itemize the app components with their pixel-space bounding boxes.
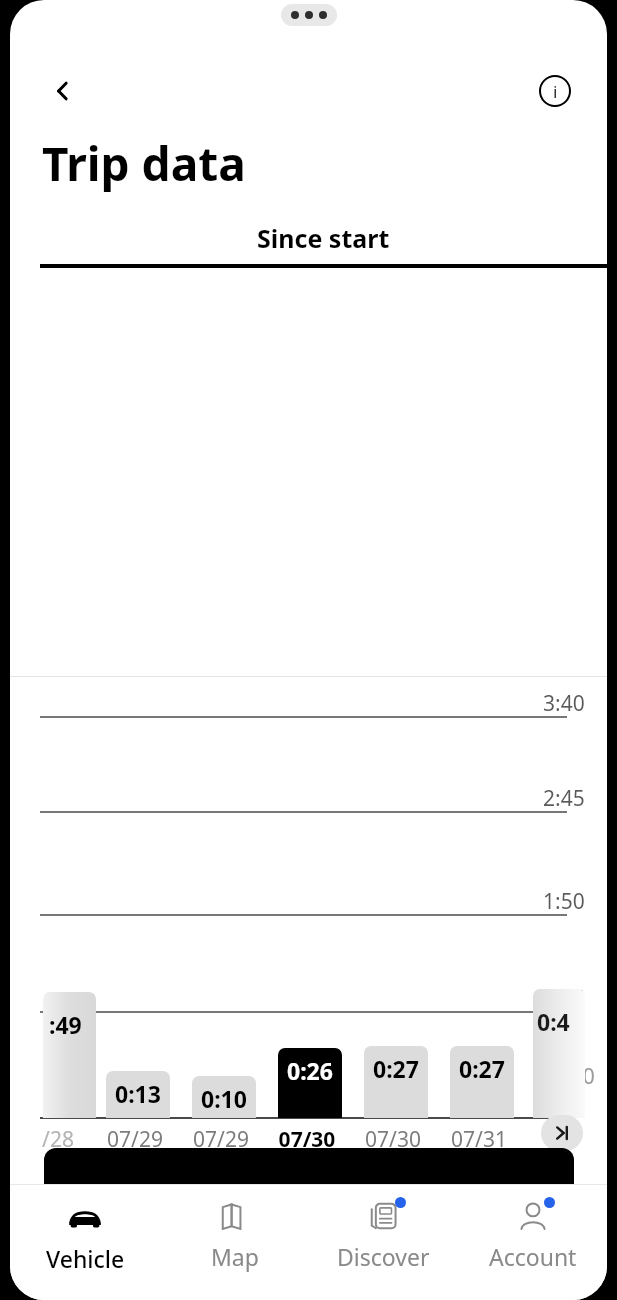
staticText: 0:27 [373, 1053, 419, 1084]
staticText: 80 [405, 1221, 443, 1266]
staticText: 0:10 [201, 1083, 247, 1114]
staticText: 2:45 [543, 784, 585, 813]
staticText: i [553, 80, 558, 103]
staticText: 07/29 [92, 1125, 178, 1151]
staticText: 07/29 [178, 1125, 264, 1151]
button[interactable] [192, 1076, 256, 1118]
staticText: Vehicle [46, 1243, 125, 1274]
staticText: Trip data [42, 132, 246, 195]
staticText: /28 [24, 1125, 92, 1151]
staticText: 07/30 [350, 1125, 436, 1151]
button[interactable]: Share trip data [44, 1148, 574, 1248]
button[interactable]: 26 [10, 1179, 308, 1300]
staticText: Share trip data [235, 1178, 420, 1213]
staticText: 0:26 [287, 1055, 333, 1086]
staticText: Discover [337, 1241, 430, 1272]
staticText: 0:55 [543, 984, 585, 1013]
staticText: 07/30 [264, 1125, 350, 1151]
button[interactable] [450, 1046, 514, 1118]
button[interactable]: Back [40, 68, 86, 114]
button[interactable] [364, 1046, 428, 1118]
staticText: 0:27 [459, 1053, 505, 1084]
button[interactable]: Discover [309, 1185, 458, 1272]
staticText: 1:50 [543, 887, 585, 916]
staticText: 3:40 [543, 689, 585, 718]
button[interactable]: Account [458, 1185, 607, 1272]
button[interactable]: 80 [308, 1179, 607, 1300]
staticText: 07/31 [436, 1125, 522, 1151]
staticText: Since start [257, 221, 390, 255]
staticText: 0:4 [537, 1006, 570, 1037]
staticText: :49 [49, 1009, 82, 1040]
button[interactable]: Skip to latest [541, 1115, 583, 1151]
staticText: 26 [114, 1221, 152, 1266]
staticText: 0:00 [553, 1062, 595, 1091]
staticText: Map [211, 1241, 259, 1272]
staticText: Account [489, 1241, 577, 1272]
button[interactable]: Since start [40, 221, 607, 268]
button[interactable]: Info [533, 69, 577, 113]
button[interactable] [106, 1071, 170, 1118]
button[interactable] [278, 1048, 342, 1118]
staticText: km/h [449, 1230, 511, 1264]
staticText: 0:13 [115, 1078, 161, 1109]
button[interactable]: Vehicle [10, 1185, 160, 1274]
button[interactable]: Map [160, 1185, 309, 1272]
